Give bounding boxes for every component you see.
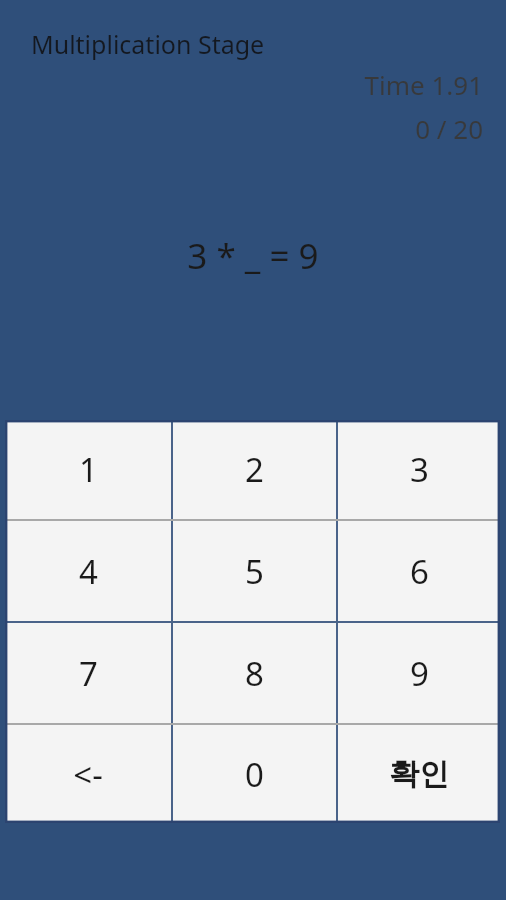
button[interactable]: 4 [5,521,171,621]
button[interactable]: 7 [5,623,171,723]
staticText: 0 [245,752,264,797]
staticText: 확인 [389,755,449,793]
button[interactable]: 3 [338,420,500,519]
button[interactable]: 5 [173,521,336,621]
button[interactable]: 2 [173,420,336,519]
button[interactable]: Backspace [5,725,171,823]
staticText: Multiplication Stage [31,27,265,61]
staticText: 2 [245,447,264,492]
button[interactable]: 0 [173,725,336,823]
button[interactable]: 확인 [338,725,500,823]
staticText: 8 [245,651,264,696]
staticText: 3 * _ = 9 [187,232,319,280]
staticText: 3 [410,447,429,492]
staticText: 4 [79,549,98,594]
staticText: <- [73,752,103,797]
staticText: Time 1.91 [364,67,483,102]
button[interactable]: 6 [338,521,500,621]
staticText: 1 [79,447,98,492]
staticText: 0 / 20 [415,111,483,146]
button[interactable]: 1 [5,420,171,519]
staticText: 6 [410,549,429,594]
button[interactable]: 8 [173,623,336,723]
staticText: 7 [79,651,98,696]
staticText: 5 [245,549,264,594]
staticText: 9 [410,651,429,696]
button[interactable]: 9 [338,623,500,723]
